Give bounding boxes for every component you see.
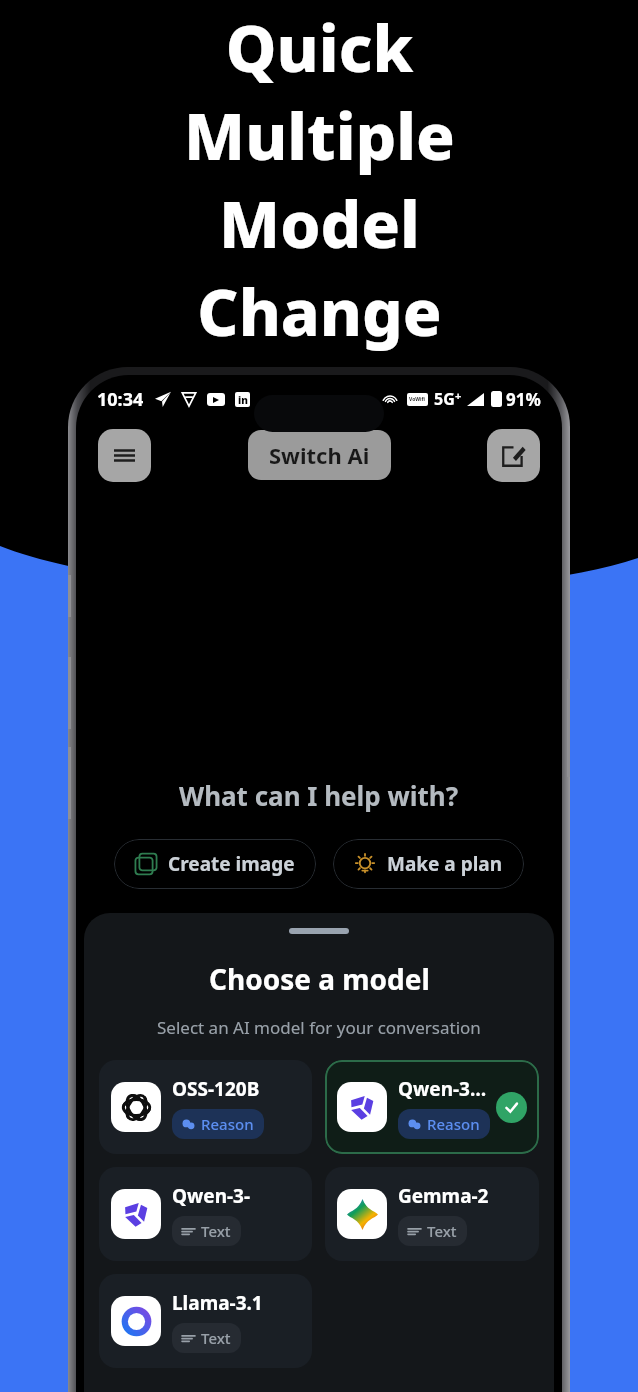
staticText: Text	[201, 1221, 231, 1241]
staticText: +	[455, 388, 462, 403]
staticText: Select an AI model for your conversation	[157, 1016, 481, 1039]
button[interactable]: New chat	[487, 429, 540, 482]
button[interactable]: Make a plan	[333, 839, 524, 889]
staticText: Qwen-3-instr…	[172, 1183, 300, 1209]
staticText: Llama-3.1	[172, 1290, 263, 1316]
staticText: What can I help with?	[179, 778, 459, 813]
staticText: in	[238, 393, 248, 407]
staticText: 5G	[434, 388, 455, 410]
button[interactable]: Llama-3.1	[99, 1274, 312, 1368]
button[interactable]: Create image	[114, 839, 316, 889]
staticText: Switch Ai	[269, 440, 370, 470]
staticText: 91%	[506, 388, 541, 411]
staticText: Reason	[201, 1114, 254, 1134]
staticText: Choose a model	[209, 960, 430, 998]
staticText: OSS-120B	[172, 1076, 260, 1102]
button[interactable]: Switch Ai	[248, 430, 391, 480]
staticText: Make a plan	[387, 851, 503, 877]
button[interactable]: OSS-120B	[99, 1060, 312, 1154]
staticText: Qwen-3…	[398, 1076, 487, 1102]
staticText: Quick Multiple Model Change	[184, 4, 455, 355]
staticText: Text	[427, 1221, 457, 1241]
button[interactable]: Qwen-3…	[325, 1060, 539, 1154]
button[interactable]: Qwen-3-instr…	[99, 1167, 312, 1261]
button[interactable]: Gemma-2	[325, 1167, 539, 1261]
staticText: Reason	[427, 1114, 480, 1134]
staticText: VoWifi	[409, 396, 426, 403]
button[interactable]: Menu	[98, 429, 151, 482]
staticText: Create image	[168, 851, 295, 877]
staticText: 10:34	[97, 387, 144, 412]
staticText: Text	[201, 1328, 231, 1348]
staticText: Gemma-2	[398, 1183, 489, 1209]
